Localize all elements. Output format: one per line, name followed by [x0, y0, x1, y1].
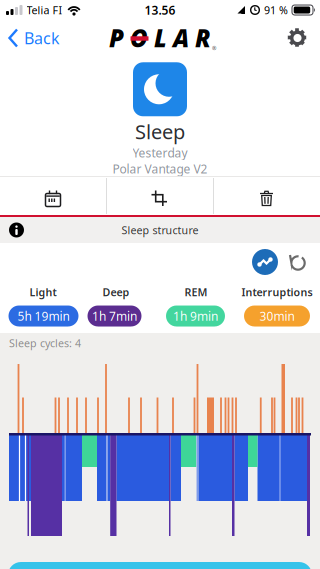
staticText: Back: [24, 27, 60, 49]
staticText: 1h 7min: [92, 308, 137, 324]
staticText: O: [130, 22, 148, 54]
button[interactable]: Sleep cycles: [290, 255, 306, 271]
button[interactable]: Settings: [288, 20, 320, 56]
staticText: REM: [184, 285, 207, 299]
button[interactable]: Delete: [213, 174, 320, 217]
staticText: 91 %: [264, 3, 288, 17]
staticText: 5h 19min: [17, 308, 69, 324]
staticText: L: [154, 22, 167, 54]
staticText: 30min: [259, 308, 294, 324]
staticText: 1h 9min: [173, 308, 218, 324]
button[interactable]: Edit: [106, 174, 213, 217]
staticText: Sleep cycles: 4: [9, 336, 81, 350]
staticText: Sleep: [135, 118, 185, 145]
staticText: Sleep structure: [121, 223, 198, 237]
button[interactable]: Sleep details: [8, 562, 312, 569]
button[interactable]: Info: [0, 222, 24, 237]
staticText: 13.56: [144, 2, 175, 18]
button[interactable]: Back: [0, 20, 60, 56]
staticText: Telia FI: [26, 3, 62, 17]
staticText: ®: [212, 45, 216, 52]
staticText: Yesterday: [132, 145, 187, 161]
staticText: A: [173, 22, 189, 54]
button[interactable]: Calendar: [0, 174, 106, 217]
staticText: Polar Vantage V2: [112, 161, 207, 177]
staticText: R: [195, 22, 211, 54]
button[interactable]: Trend: [252, 249, 278, 275]
staticText: Deep: [102, 285, 129, 299]
staticText: P: [109, 22, 124, 54]
staticText: Light: [29, 285, 56, 299]
staticText: Interruptions: [241, 285, 312, 299]
